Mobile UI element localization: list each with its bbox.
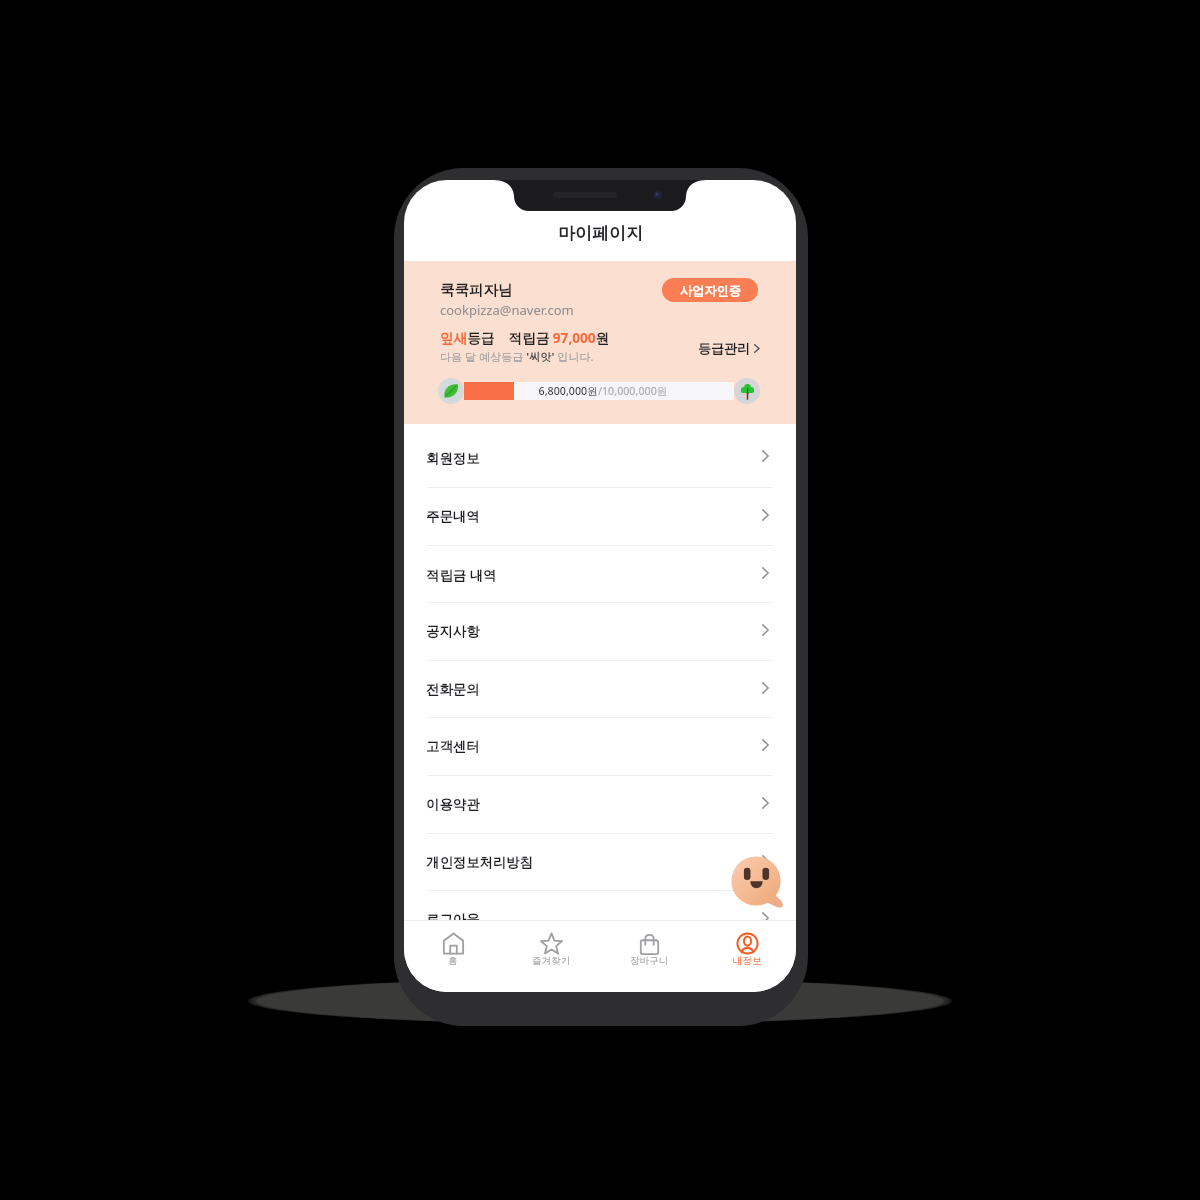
button[interactable]: 로그아웃 [404,891,796,948]
staticText: 장바구니 [630,955,669,967]
staticText: 잎새등급 적립금 97,000원 [440,328,610,347]
button[interactable]: 적립금 내역 [404,546,796,603]
button[interactable]: 즐겨찾기 [502,921,600,992]
button[interactable]: 개인정보처리방침 [404,834,796,891]
staticText: 사업자인증 [680,283,741,298]
staticText: 마이페이지 [558,223,643,244]
staticText: 즐겨찾기 [532,955,571,967]
button[interactable]: 전화문의 [404,661,796,718]
staticText: 등급관리 [698,340,750,356]
staticText: 회원정보 [426,450,762,467]
staticText: cookpizza@naver.com [440,301,574,319]
button[interactable]: 장바구니 [600,921,698,992]
staticText: 이용약관 [426,796,762,813]
staticText: 내정보 [733,955,762,967]
staticText: 전화문의 [426,681,762,698]
staticText: 다음 달 예상등급 '씨앗' 입니다. [440,349,594,364]
button[interactable]: 주문내역 [404,488,796,545]
button[interactable]: 사업자인증 [662,278,758,302]
staticText: 적립금 내역 [426,566,762,584]
staticText: 주문내역 [426,508,762,525]
button[interactable]: 홈 [404,921,502,992]
button[interactable]: 회원정보 [404,429,796,487]
button[interactable]: Chat support [730,855,788,913]
button[interactable]: 등급관리 [698,338,760,358]
staticText: 로그아웃 [426,911,762,928]
staticText: 6,800,000원/10,000,000원 [493,384,713,399]
button[interactable]: 이용약관 [404,776,796,833]
button[interactable]: 공지사항 [404,603,796,660]
button[interactable]: 고객센터 [404,718,796,775]
staticText: 홈 [448,955,458,967]
button[interactable]: 내정보 [698,921,796,992]
staticText: 공지사항 [426,623,762,640]
staticText: 쿡쿡피자님 [440,281,513,299]
staticText: 고객센터 [426,738,762,755]
staticText: 개인정보처리방침 [426,854,762,871]
